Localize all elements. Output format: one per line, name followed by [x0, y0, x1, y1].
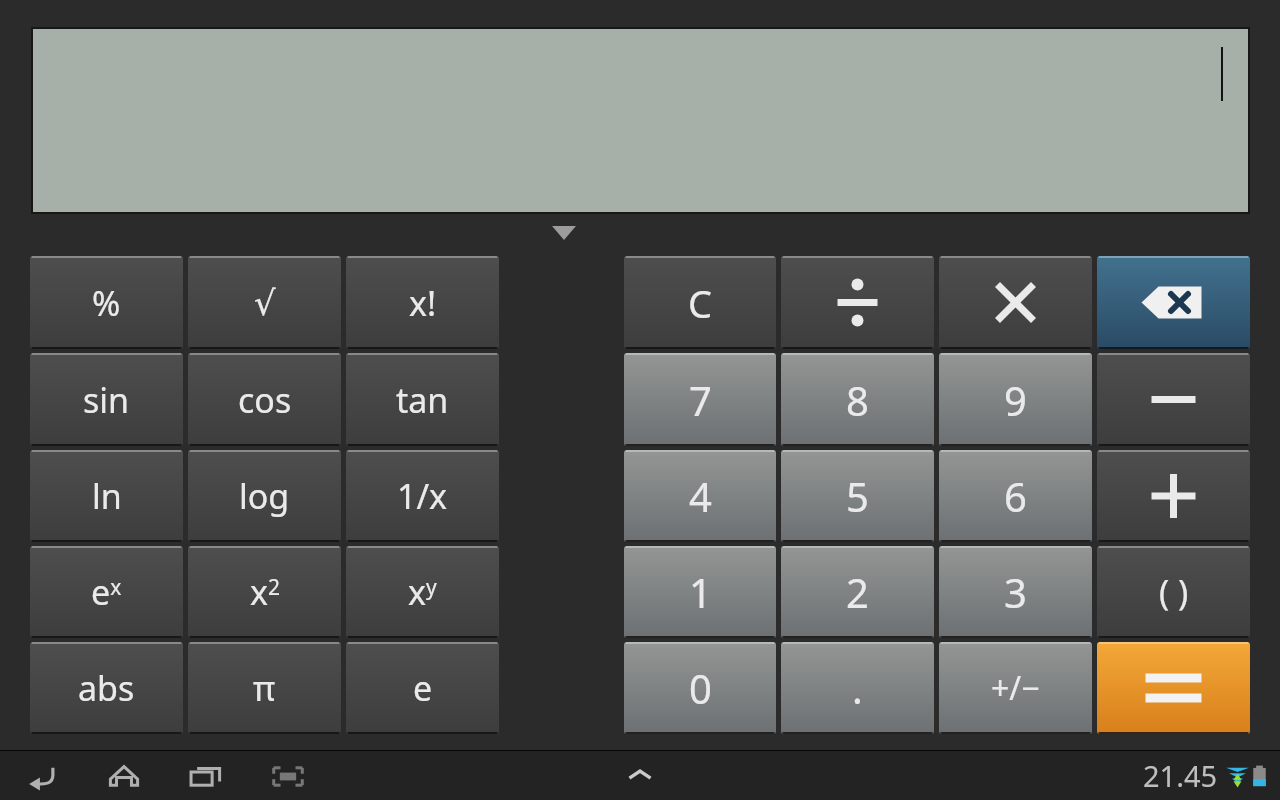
button[interactable]: tan — [346, 353, 499, 446]
button[interactable]: 5 — [781, 450, 934, 542]
button[interactable]: 7 — [624, 353, 776, 446]
button[interactable]: Minus — [1097, 353, 1250, 446]
staticText: √ — [254, 283, 276, 323]
staticText: 1/x — [397, 473, 448, 519]
button[interactable]: 4 — [624, 450, 776, 542]
staticText: 9 — [1004, 373, 1027, 427]
staticText: ln — [92, 473, 122, 519]
button[interactable]: √ — [188, 256, 341, 349]
button[interactable]: % — [30, 256, 183, 349]
button[interactable]: 2 — [781, 546, 934, 638]
button[interactable]: Equals — [1097, 642, 1250, 734]
staticText: abs — [78, 665, 135, 711]
staticText: % — [92, 280, 121, 326]
button[interactable]: . — [781, 642, 934, 734]
staticText: 7 — [689, 373, 712, 427]
button[interactable]: 3 — [939, 546, 1092, 638]
button[interactable]: Screenshot — [260, 752, 316, 798]
button[interactable]: 8 — [781, 353, 934, 446]
button[interactable]: Expand — [618, 759, 662, 791]
button[interactable]: Multiply — [939, 256, 1092, 349]
button[interactable]: Show history — [552, 226, 576, 240]
staticText: log — [239, 473, 290, 519]
button[interactable]: Recent apps — [178, 752, 234, 798]
staticText: tan — [396, 377, 449, 423]
staticText: 1 — [689, 565, 712, 619]
button[interactable]: π — [188, 642, 341, 734]
staticText: 3 — [1004, 565, 1027, 619]
staticText: 21.45 — [1143, 756, 1218, 795]
button[interactable]: ln — [30, 450, 183, 542]
button[interactable]: 0 — [624, 642, 776, 734]
button[interactable]: x2 — [188, 546, 341, 638]
button[interactable]: C — [624, 256, 776, 349]
staticText: x! — [409, 280, 437, 326]
button[interactable]: e — [346, 642, 499, 734]
button[interactable]: sin — [30, 353, 183, 446]
button[interactable]: +/− — [939, 642, 1092, 734]
button[interactable]: 1/x — [346, 450, 499, 542]
button[interactable]: x! — [346, 256, 499, 349]
staticText: 6 — [1004, 469, 1027, 523]
staticText: ( ) — [1159, 569, 1189, 615]
staticText: xy — [408, 569, 437, 615]
staticText: 4 — [689, 469, 712, 523]
button[interactable]: Home — [96, 752, 152, 798]
button[interactable]: abs — [30, 642, 183, 734]
button[interactable]: Back — [14, 752, 70, 798]
staticText: e — [413, 665, 433, 711]
button[interactable]: Divide — [781, 256, 934, 349]
button[interactable]: 6 — [939, 450, 1092, 542]
button[interactable]: cos — [188, 353, 341, 446]
button[interactable]: ( ) — [1097, 546, 1250, 638]
staticText: sin — [83, 377, 130, 423]
staticText: ex — [91, 569, 122, 615]
staticText: 0 — [689, 661, 712, 715]
staticText: x2 — [250, 569, 280, 615]
staticText: C — [688, 277, 713, 329]
button[interactable]: Backspace — [1097, 256, 1250, 349]
button[interactable] — [33, 29, 1248, 212]
button[interactable]: Plus — [1097, 450, 1250, 542]
staticText: 5 — [846, 469, 869, 523]
button[interactable]: 9 — [939, 353, 1092, 446]
button[interactable]: log — [188, 450, 341, 542]
staticText: cos — [238, 377, 292, 423]
staticText: . — [852, 661, 863, 715]
button[interactable]: ex — [30, 546, 183, 638]
staticText: 2 — [846, 565, 869, 619]
staticText: +/− — [991, 666, 1040, 710]
staticText: 8 — [846, 373, 869, 427]
button[interactable]: 1 — [624, 546, 776, 638]
staticText: π — [253, 665, 276, 711]
button[interactable]: xy — [346, 546, 499, 638]
